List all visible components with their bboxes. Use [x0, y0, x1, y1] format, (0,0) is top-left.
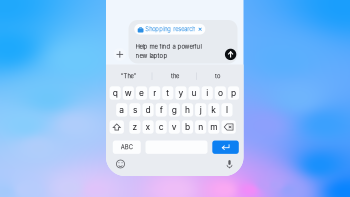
button[interactable]: m: [208, 120, 219, 134]
button[interactable]: to: [196, 70, 238, 82]
staticText: w: [125, 88, 132, 98]
staticText: b: [185, 122, 190, 132]
button[interactable]: Shopping research: [134, 24, 205, 34]
button[interactable]: i: [202, 86, 213, 100]
button[interactable]: j: [195, 103, 206, 117]
staticText: k: [211, 105, 216, 115]
button[interactable]: Return: [106, 0, 243, 176]
button[interactable]: a: [116, 103, 127, 117]
button[interactable]: s: [129, 103, 140, 117]
button[interactable]: d: [142, 103, 154, 117]
staticText: v: [172, 122, 177, 132]
staticText: to: [215, 73, 220, 80]
staticText: m: [210, 122, 217, 132]
button[interactable]: Letters: [106, 0, 243, 176]
button[interactable]: f: [156, 103, 167, 117]
staticText: l: [226, 105, 228, 115]
staticText: u: [192, 88, 197, 98]
staticText: o: [218, 88, 223, 98]
button[interactable]: h: [182, 103, 193, 117]
button[interactable]: w: [123, 86, 134, 100]
button[interactable]: p: [228, 86, 239, 100]
button[interactable]: e: [136, 86, 147, 100]
staticText: e: [139, 88, 144, 98]
staticText: f: [160, 105, 163, 115]
button[interactable]: t: [162, 86, 173, 100]
button[interactable]: z: [129, 120, 140, 134]
staticText: ABC: [121, 144, 133, 151]
staticText: y: [178, 88, 183, 98]
staticText: h: [185, 105, 190, 115]
button[interactable]: Delete: [106, 0, 243, 176]
button[interactable]: q: [110, 86, 121, 100]
staticText: new laptop: [135, 52, 167, 59]
button[interactable]: x: [142, 120, 154, 134]
button[interactable]: the: [154, 70, 196, 82]
staticText: Help me find a powerful: [135, 43, 201, 50]
staticText: a: [119, 105, 124, 115]
button[interactable]: l: [221, 103, 233, 117]
button[interactable]: Emoji: [114, 157, 127, 170]
button[interactable]: Shift: [106, 0, 243, 176]
staticText: d: [145, 105, 150, 115]
button[interactable]: c: [156, 120, 167, 134]
staticText: Shopping research: [145, 26, 195, 33]
button[interactable]: Send: [224, 48, 237, 61]
staticText: the: [171, 73, 179, 80]
button[interactable]: y: [175, 86, 186, 100]
button[interactable]: n: [195, 120, 206, 134]
button[interactable]: v: [169, 120, 180, 134]
button[interactable]: Space: [106, 0, 243, 176]
staticText: p: [231, 88, 236, 98]
staticText: j: [200, 105, 202, 115]
staticText: r: [153, 88, 156, 98]
staticText: n: [198, 122, 203, 132]
staticText: x: [145, 122, 150, 132]
staticText: s: [133, 105, 137, 115]
staticText: c: [159, 122, 164, 132]
button[interactable]: b: [182, 120, 193, 134]
button[interactable]: Add attachment: [113, 47, 127, 61]
button[interactable]: k: [208, 103, 219, 117]
button[interactable]: “The”: [107, 70, 149, 82]
staticText: z: [132, 122, 137, 132]
staticText: t: [166, 88, 169, 98]
staticText: i: [206, 88, 208, 98]
button[interactable]: o: [215, 86, 226, 100]
button[interactable]: u: [188, 86, 200, 100]
staticText: “The”: [120, 73, 136, 80]
button[interactable]: Dictate: [223, 157, 236, 170]
staticText: q: [113, 88, 118, 98]
button[interactable]: g: [169, 103, 180, 117]
button[interactable]: r: [149, 86, 160, 100]
staticText: g: [172, 105, 177, 115]
